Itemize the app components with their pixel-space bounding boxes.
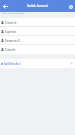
button[interactable]: Settings <box>67 3 74 10</box>
button[interactable]: Tenant In <box>0 18 75 27</box>
button[interactable]: Supertek <box>0 27 75 36</box>
staticText: Supertek <box>5 30 16 34</box>
button[interactable]: Back <box>2 3 9 10</box>
staticText: Panasonic R <box>5 39 20 43</box>
button[interactable]: Tentacle <box>0 45 75 54</box>
staticText: Switch Account <box>27 4 49 8</box>
button[interactable]: Add New Acct <box>0 59 75 68</box>
button[interactable]: Panasonic R <box>0 36 75 45</box>
staticText: Tentacle <box>5 48 16 52</box>
staticText: Add New Acct <box>4 62 70 66</box>
staticText: Tenant In <box>5 21 17 25</box>
staticText: Your Team Accounts <box>2 12 24 15</box>
